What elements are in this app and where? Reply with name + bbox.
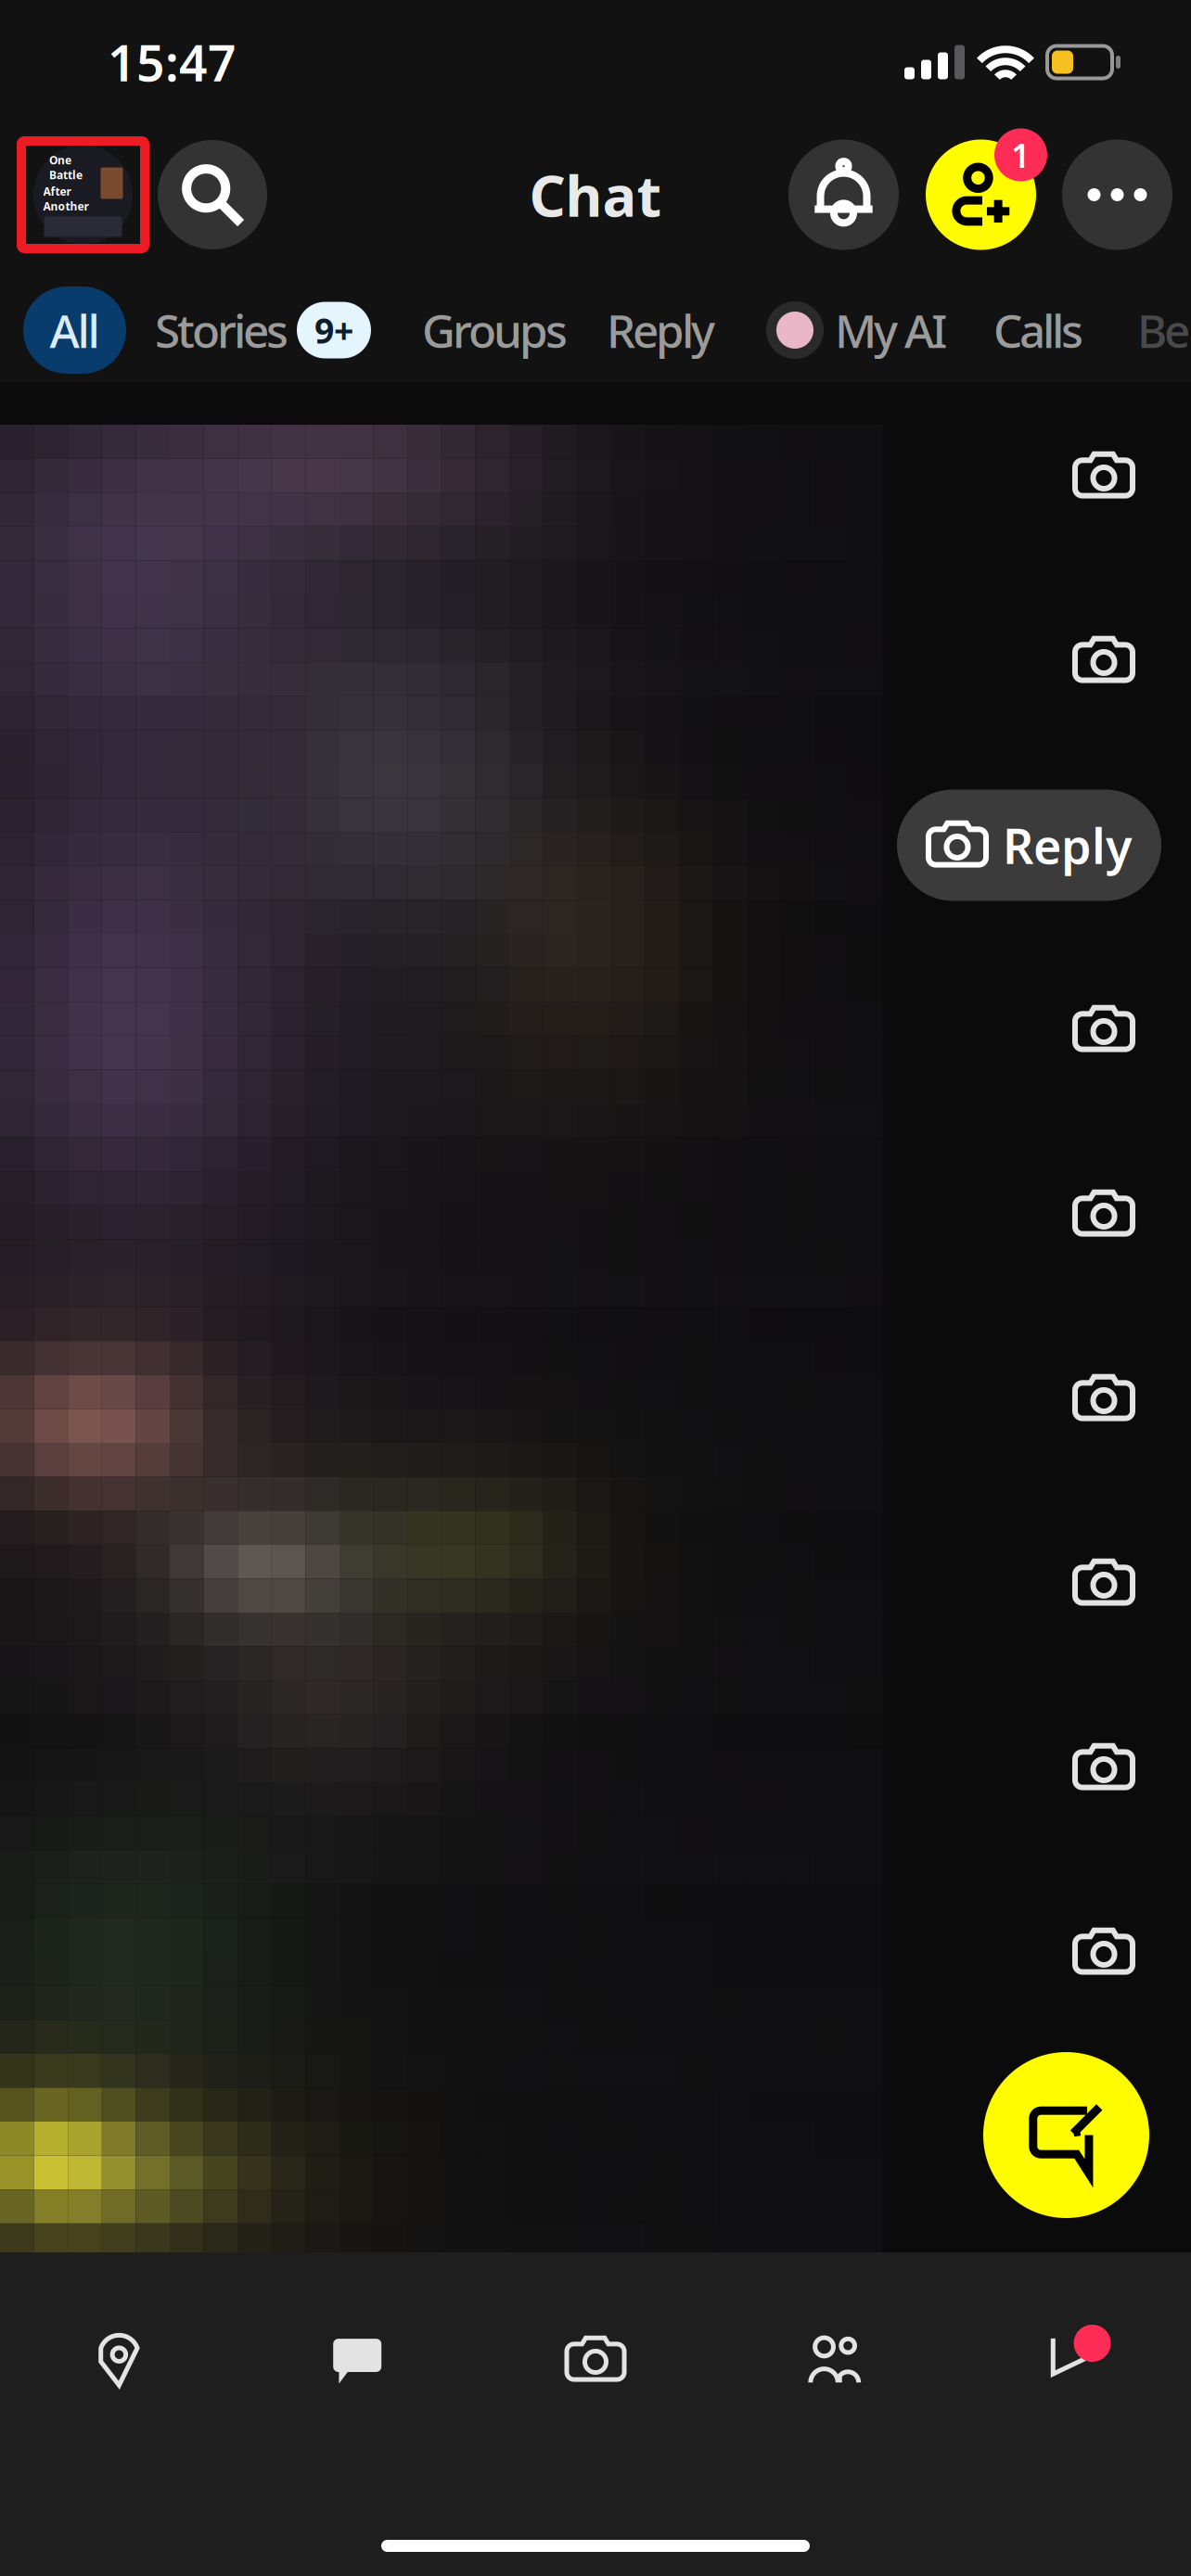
button[interactable]: Groups	[422, 287, 568, 374]
button[interactable]: Send a snap	[1044, 937, 1164, 1122]
staticText: Calls	[993, 300, 1083, 360]
button[interactable]: Send a snap	[1044, 1491, 1164, 1676]
button[interactable]: Send a snap	[1044, 1860, 1164, 2045]
button[interactable]: My AI	[766, 287, 947, 374]
button[interactable]: Camera	[476, 2300, 715, 2420]
button[interactable]: New chat	[983, 2052, 1149, 2218]
button[interactable]: Send a snap	[1044, 384, 1164, 568]
staticText: Reply	[607, 300, 715, 360]
staticText: Chat	[529, 157, 662, 232]
button[interactable]: More options	[1062, 140, 1172, 250]
button[interactable]: Map	[0, 2300, 238, 2420]
button[interactable]: Send a snap	[1044, 1122, 1164, 1307]
button[interactable]: Profile	[28, 140, 138, 250]
button[interactable]: Stories	[715, 2300, 953, 2420]
staticText: Groups	[422, 300, 568, 360]
staticText: One Battle	[49, 153, 83, 182]
button[interactable]: Send a snap	[1044, 1676, 1164, 1860]
button[interactable]: Add friends	[926, 140, 1036, 250]
staticText: Stories	[155, 300, 288, 360]
staticText: All	[50, 300, 100, 360]
button[interactable]: Send a snap	[1044, 1307, 1164, 1491]
staticText: My AI	[835, 300, 947, 360]
button[interactable]: All	[23, 287, 126, 374]
button[interactable]: Notifications	[788, 140, 899, 250]
button[interactable]: Spotlight	[953, 2300, 1191, 2420]
button[interactable]: Chat	[238, 2300, 476, 2420]
staticText: 1	[1011, 133, 1031, 177]
button[interactable]: Stories	[155, 287, 371, 374]
button[interactable]: Reply	[897, 790, 1161, 901]
staticText: Reply	[1003, 813, 1132, 877]
button[interactable]: Search	[158, 140, 267, 249]
staticText: After Another	[43, 184, 89, 214]
staticText: Be	[1137, 300, 1190, 360]
button[interactable]: Reply	[607, 287, 715, 374]
button[interactable]: Calls	[993, 287, 1083, 374]
staticText: 15:47	[108, 29, 237, 95]
button[interactable]: Send a snap	[1044, 568, 1164, 753]
staticText: 9+	[314, 307, 353, 353]
